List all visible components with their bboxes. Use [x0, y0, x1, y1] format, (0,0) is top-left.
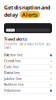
staticText: Central line — [4, 59, 21, 63]
staticText: Alerts — [22, 11, 38, 18]
staticText: District line — [4, 71, 20, 75]
staticText: Northern line — [4, 83, 24, 86]
staticText: Jubilee line — [4, 77, 22, 81]
staticText: Circle line — [4, 65, 19, 69]
staticText: Bakerloo line — [4, 53, 23, 57]
staticText: Victoria line — [4, 89, 21, 92]
staticText: Get disruption and — [4, 4, 50, 11]
staticText: delay — [4, 11, 18, 18]
staticText: Check the latest status before you trave… — [4, 42, 51, 50]
staticText: Travel alerts — [4, 36, 27, 41]
